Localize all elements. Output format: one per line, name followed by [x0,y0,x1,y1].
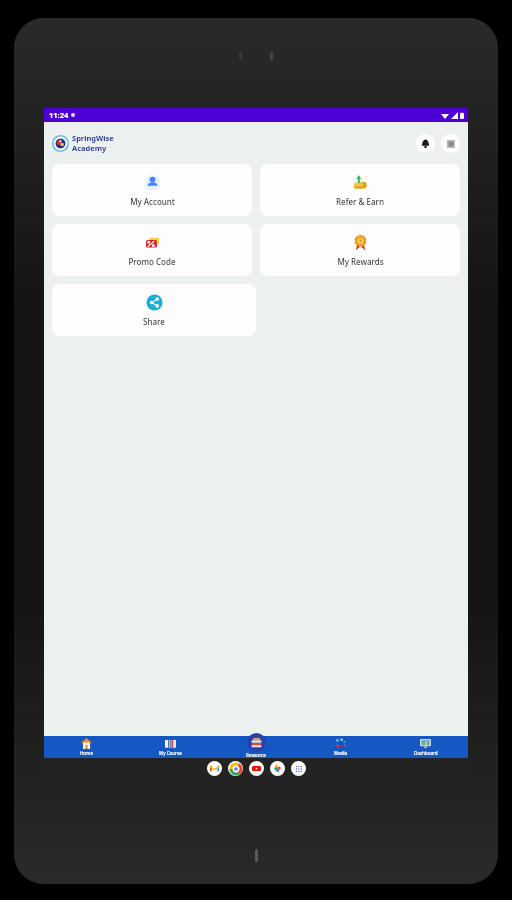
button[interactable]: Menu [441,134,460,153]
button[interactable] [249,761,264,776]
button[interactable]: My Rewards [260,224,460,276]
button[interactable]: Resource [226,733,286,758]
staticText: Resource [246,752,266,758]
button[interactable]: My Course [128,736,213,758]
button[interactable]: Media [298,736,383,758]
button[interactable]: Share [52,284,256,336]
staticText: Refer & Earn [336,196,384,207]
button[interactable] [291,761,306,776]
button[interactable] [207,761,222,776]
button[interactable]: Dashboard [383,736,468,758]
button[interactable]: Home [44,736,128,758]
staticText: SpringWise [72,133,114,143]
staticText: Home [80,750,93,756]
staticText: My Course [159,750,182,756]
button[interactable]: Notifications [416,134,435,153]
button[interactable] [270,761,285,776]
button[interactable]: My Account [52,164,252,216]
staticText: 11:24 [49,110,69,120]
staticText: My Account [130,196,175,207]
staticText: Dashboard [414,750,438,756]
staticText: Media [334,750,348,756]
staticText: Promo Code [128,256,176,267]
staticText: My Rewards [337,256,384,267]
button[interactable]: Refer & Earn [260,164,460,216]
staticText: Share [143,316,165,327]
staticText: Academy [72,143,107,153]
button[interactable] [228,761,243,776]
button[interactable]: Promo Code [52,224,252,276]
